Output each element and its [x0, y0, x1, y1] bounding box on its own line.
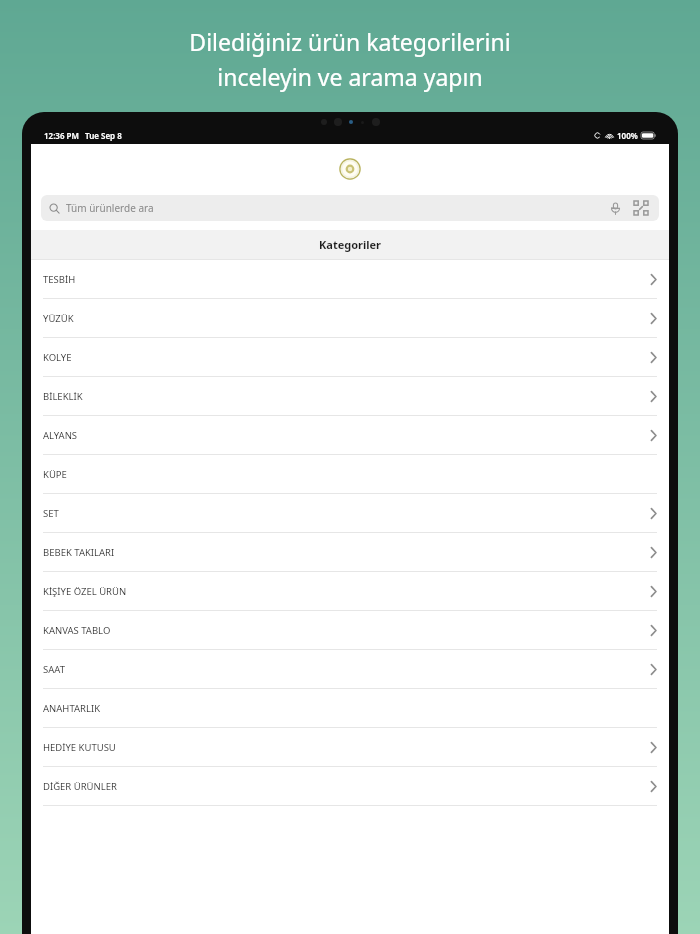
staticText: KANVAS TABLO [43, 624, 111, 637]
button[interactable]: SET [31, 494, 669, 532]
staticText: inceleyin ve arama yapın [217, 61, 483, 92]
button[interactable]: BEBEK TAKILARI [31, 533, 669, 571]
button[interactable]: Sesli arama [605, 198, 625, 218]
staticText: Tüm ürünlerde ara [66, 201, 154, 215]
staticText: YÜZÜK [43, 312, 74, 325]
button[interactable]: TESBİH [31, 260, 669, 298]
staticText: SET [43, 507, 59, 520]
staticText: BEBEK TAKILARI [43, 546, 115, 559]
staticText: DİĞER ÜRÜNLER [43, 780, 117, 793]
staticText: KÜPE [43, 468, 67, 481]
staticText: BİLEKLİK [43, 390, 83, 403]
staticText: KOLYE [43, 351, 72, 364]
button[interactable]: HEDİYE KUTUSU [31, 728, 669, 766]
staticText: Kategoriler [319, 237, 382, 252]
button[interactable]: Barkod tara [631, 198, 651, 218]
staticText: Dilediğiniz ürün kategorilerini [189, 26, 511, 57]
button[interactable]: SAAT [31, 650, 669, 688]
button[interactable]: KÜPE [31, 455, 669, 493]
staticText: ALYANS [43, 429, 78, 442]
staticText: 100% [617, 130, 638, 141]
staticText: Tue Sep 8 [85, 130, 122, 141]
button[interactable]: BİLEKLİK [31, 377, 669, 415]
button[interactable]: KANVAS TABLO [31, 611, 669, 649]
button[interactable]: DİĞER ÜRÜNLER [31, 767, 669, 805]
button[interactable]: Tüm ürünlerde ara [41, 195, 659, 221]
button[interactable]: YÜZÜK [31, 299, 669, 337]
staticText: SAAT [43, 663, 65, 676]
staticText: TESBİH [43, 273, 76, 286]
staticText: HEDİYE KUTUSU [43, 741, 116, 754]
button[interactable]: KİŞİYE ÖZEL ÜRÜN [31, 572, 669, 610]
button[interactable]: ALYANS [31, 416, 669, 454]
button[interactable]: ANAHTARLIK [31, 689, 669, 727]
button[interactable]: KOLYE [31, 338, 669, 376]
staticText: 12:36 PM [44, 130, 79, 141]
staticText: ANAHTARLIK [43, 702, 101, 715]
staticText: KİŞİYE ÖZEL ÜRÜN [43, 585, 127, 598]
